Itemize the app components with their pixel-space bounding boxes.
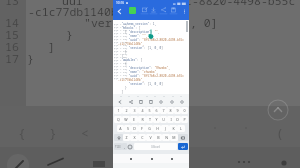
- staticText: T: [149, 117, 151, 122]
- staticText: ${i + 12}: [114, 22, 128, 25]
- button[interactable]: U: [160, 116, 167, 123]
- staticText: 2: [125, 108, 128, 113]
- button[interactable]: Translate: [158, 99, 164, 105]
- button[interactable]: K: [169, 125, 177, 132]
- staticText: ${i + 12}: [114, 28, 128, 31]
- button[interactable]: 8: [167, 107, 174, 114]
- button[interactable]: Share: [128, 99, 134, 105]
- staticText: -c1c77db1140b",: [118, 78, 145, 82]
- button[interactable]: F: [138, 125, 145, 132]
- button[interactable]: N: [162, 134, 170, 141]
- staticText: D: [133, 126, 136, 131]
- staticText: <: [81, 124, 89, 142]
- staticText: "ver: [84, 15, 112, 31]
- button[interactable]: Emoji: [127, 144, 133, 150]
- button[interactable]: Recents: [168, 155, 175, 162]
- button[interactable]: B: [154, 134, 162, 141]
- staticText: Y: [155, 117, 158, 122]
- button[interactable]: J: [161, 125, 169, 132]
- button[interactable]: 0: [181, 107, 188, 114]
- button[interactable]: I: [167, 116, 174, 123]
- staticText: ${i + 12}: [114, 55, 128, 58]
- button[interactable]: Back: [115, 7, 123, 15]
- staticText: N: [165, 135, 168, 140]
- button[interactable]: 2: [122, 107, 130, 114]
- button[interactable]: Q: [114, 116, 122, 123]
- staticText: I: [170, 117, 172, 122]
- staticText: uui: [62, 0, 83, 9]
- button[interactable]: Save: [149, 7, 158, 15]
- button[interactable]: D: [131, 125, 138, 132]
- button[interactable]: Enter: [178, 143, 188, 150]
- button[interactable]: 5: [146, 107, 153, 114]
- button[interactable]: E: [130, 116, 138, 123]
- button[interactable]: 1: [114, 107, 122, 114]
- button[interactable]: Text: [169, 99, 175, 105]
- button[interactable]: A: [117, 125, 124, 132]
- button[interactable]: Backspace: [178, 134, 188, 141]
- staticText: ${i + 12}: [114, 70, 128, 73]
- button[interactable]: 4: [138, 107, 146, 114]
- staticText: ${i + 12}: [114, 49, 128, 52]
- button[interactable]: Z: [123, 134, 130, 141]
- button[interactable]: Home: [148, 155, 155, 162]
- staticText: , 0]: [190, 15, 218, 31]
- button[interactable]: V: [146, 134, 154, 141]
- staticText: -c1c77db1140b",: [118, 42, 145, 46]
- staticText: 15: [5, 27, 19, 43]
- button[interactable]: 9: [174, 107, 181, 114]
- staticText: W: [124, 117, 128, 122]
- button[interactable]: Edit: [7, 154, 29, 168]
- staticText: 8: [169, 108, 172, 113]
- button[interactable]: X: [130, 134, 138, 141]
- button[interactable]: O: [174, 116, 181, 123]
- button[interactable]: Drive: [169, 7, 178, 15]
- staticText: (: [276, 124, 284, 142]
- button[interactable]: M: [170, 134, 178, 141]
- button[interactable]: Back: [127, 155, 134, 162]
- staticText: ${i + 12}: [114, 46, 128, 49]
- button[interactable]: Symbols: [114, 143, 122, 150]
- staticText: "modules": [: [118, 58, 143, 62]
- button[interactable]: More options: [181, 7, 187, 16]
- button[interactable]: P: [181, 116, 188, 123]
- button[interactable]: Open with Sheets: [129, 7, 136, 14]
- button[interactable]: 3: [130, 107, 138, 114]
- button[interactable]: Share: [159, 7, 168, 15]
- button[interactable]: L: [177, 125, 185, 132]
- button[interactable]: Paste: [148, 99, 154, 105]
- button[interactable]: More: [179, 99, 185, 105]
- button[interactable]: C: [138, 134, 146, 141]
- staticText: H: [156, 126, 159, 131]
- button[interactable]: G: [145, 125, 153, 132]
- staticText: 5: [148, 108, 151, 113]
- button[interactable]: Comma: [122, 143, 127, 150]
- staticText: M: [172, 135, 176, 140]
- button[interactable]: S: [124, 125, 131, 132]
- staticText: "description": "Rhumba",: [118, 66, 171, 70]
- staticText: GBoard: [151, 145, 161, 149]
- staticText: Z: [125, 135, 128, 140]
- staticText: ],: [118, 54, 125, 58]
- staticText: }: [118, 86, 127, 90]
- button[interactable]: W: [122, 116, 130, 123]
- staticText: ${i + 12}: [114, 34, 128, 37]
- button[interactable]: H: [153, 125, 161, 132]
- staticText: ${i + 12}: [114, 37, 128, 40]
- button[interactable]: Copy: [138, 99, 144, 105]
- button[interactable]: Space: [134, 143, 177, 150]
- button[interactable]: 6: [153, 107, 160, 114]
- button[interactable]: R: [138, 116, 146, 123]
- button[interactable]: T: [146, 116, 153, 123]
- staticText: "version": [1, 0, 0]: [118, 46, 164, 50]
- staticText: 4: [141, 108, 144, 113]
- button[interactable]: Attach: [93, 159, 107, 168]
- button[interactable]: Scroll to top: [267, 99, 289, 121]
- button[interactable]: 7: [160, 107, 167, 114]
- button[interactable]: Y: [153, 116, 160, 123]
- staticText: S: [127, 126, 129, 131]
- button[interactable]: Share: [47, 157, 68, 168]
- button[interactable]: Print: [140, 7, 149, 15]
- button[interactable]: Undo: [117, 99, 123, 105]
- button[interactable]: Shift: [114, 134, 123, 141]
